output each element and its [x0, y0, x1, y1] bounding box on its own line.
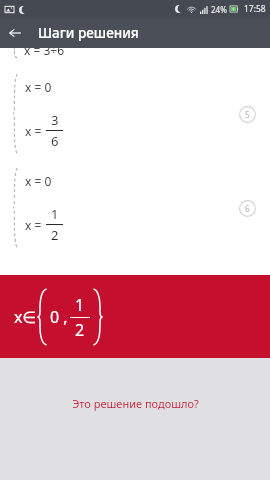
button[interactable]: x∈	[0, 275, 270, 358]
button[interactable]: x = 0	[0, 74, 270, 154]
button[interactable]: Это решение подошло?	[60, 392, 211, 415]
staticText: 2	[51, 226, 59, 244]
staticText: Шаги решения	[38, 24, 139, 42]
staticText: x = 3÷6	[24, 48, 65, 58]
staticText: x = 0	[25, 173, 52, 189]
staticText: 3	[51, 111, 59, 129]
staticText: 0 ,	[50, 306, 68, 328]
staticText: 1	[75, 294, 85, 316]
staticText: x = 0	[25, 79, 52, 95]
staticText: x =	[25, 123, 42, 139]
staticText: 2	[75, 319, 85, 341]
staticText: 1	[51, 205, 59, 223]
staticText: 6	[51, 132, 59, 150]
staticText: Это решение подошло?	[72, 396, 199, 411]
staticText: 17:58	[244, 3, 266, 15]
staticText: 5	[245, 109, 250, 120]
button[interactable]: x = 0	[0, 168, 270, 248]
staticText: 24%	[211, 4, 227, 15]
button[interactable]: Назад	[0, 18, 30, 48]
staticText: x∈	[14, 306, 37, 328]
staticText: x =	[25, 217, 42, 233]
staticText: 6	[245, 203, 250, 214]
